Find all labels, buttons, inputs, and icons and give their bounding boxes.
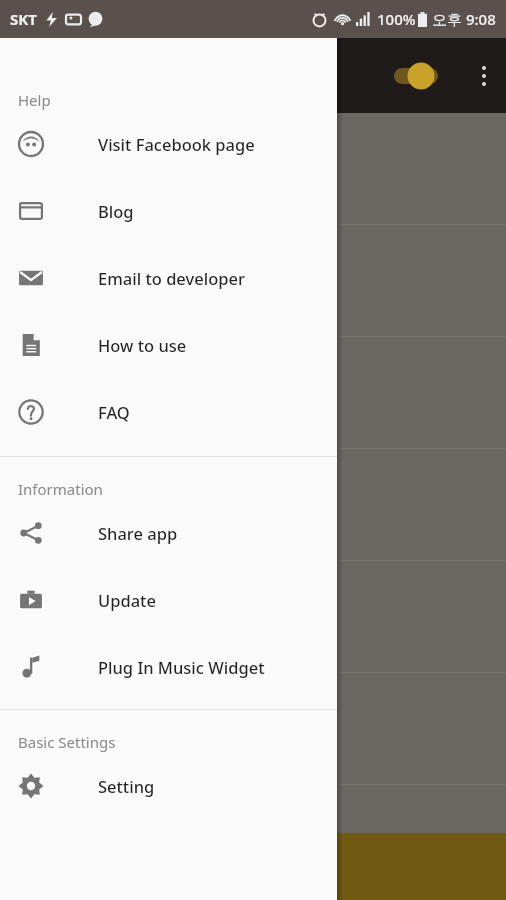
staticText: Update	[98, 589, 156, 611]
button[interactable]: FAQ	[0, 378, 337, 445]
button[interactable]: 2016.03.26 오후 08:57	[0, 113, 506, 225]
staticText: Visit Facebook page	[98, 133, 255, 155]
button[interactable]: Blog	[0, 177, 337, 244]
staticText: 100%	[377, 9, 416, 29]
staticText: Blog	[98, 200, 134, 222]
staticText: 2016.03.26 오후 08:57	[18, 129, 151, 147]
staticText: 2016.03.26 오후 08:32	[18, 577, 151, 595]
staticText: SKT	[10, 9, 37, 29]
staticText: How to use	[98, 334, 187, 356]
staticText: Information	[18, 479, 103, 499]
button[interactable]: Toggle	[386, 56, 442, 96]
button[interactable]: Plug In Music Widget	[0, 633, 337, 700]
button[interactable]: 2016.03.26 오후 08:35	[0, 449, 506, 561]
button[interactable]: Visit Facebook page	[0, 110, 337, 177]
button[interactable]: 2016.03.26 오후 08:50	[0, 225, 506, 337]
button[interactable]: 2016.03.26 오후 08:32	[0, 561, 506, 673]
button[interactable]: How to use	[0, 311, 337, 378]
button[interactable]: Setting	[0, 752, 337, 819]
button[interactable]: More options	[462, 38, 506, 113]
button[interactable]: 2016.03.26 오후 08:45	[0, 337, 506, 449]
button[interactable]: 2016.03.26 오후 07:59	[0, 785, 506, 897]
button[interactable]: Update	[0, 566, 337, 633]
staticText: Basic Settings	[18, 732, 116, 752]
staticText: 2016.03.26 오후 08:45	[18, 353, 151, 371]
staticText: Email to developer	[98, 267, 245, 289]
staticText: Help	[18, 90, 51, 110]
button[interactable]: Email to developer	[0, 244, 337, 311]
button[interactable]: 2016.03.26 오후 08:24	[0, 673, 506, 785]
staticText: 오후 9:08	[432, 9, 496, 29]
staticText: Share app	[98, 522, 178, 544]
button[interactable]: Share app	[0, 499, 337, 566]
staticText: Plug In Music Widget	[98, 656, 265, 678]
staticText: Setting	[98, 775, 155, 797]
staticText: FAQ	[98, 401, 130, 423]
